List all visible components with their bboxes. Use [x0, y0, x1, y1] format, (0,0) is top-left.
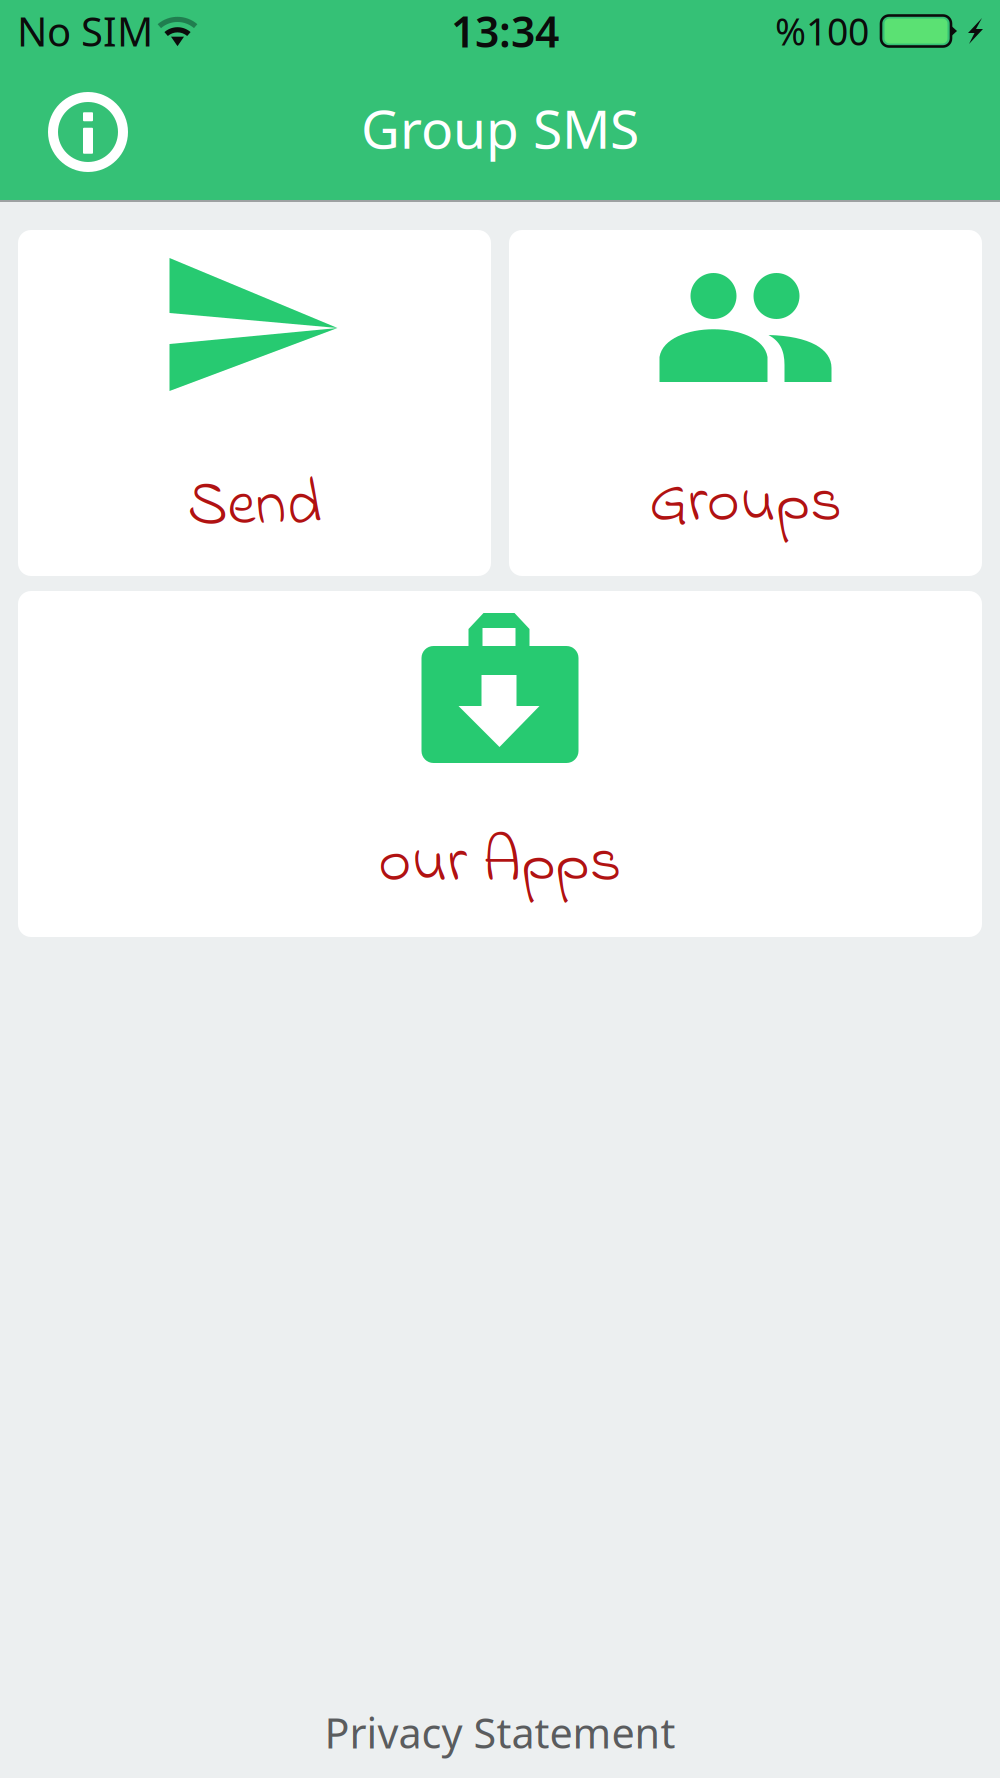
staticText: Send	[187, 462, 321, 553]
staticText: %100	[775, 6, 869, 56]
staticText: Privacy Statement	[324, 1705, 675, 1760]
button[interactable]: Info	[0, 62, 152, 200]
button[interactable]: our Apps	[18, 591, 982, 937]
staticText: No SIM	[17, 4, 153, 57]
staticText: our Apps	[378, 819, 621, 910]
button[interactable]: Groups	[509, 230, 982, 576]
staticText: 13:34	[451, 3, 559, 59]
staticText: Group SMS	[361, 93, 639, 163]
button[interactable]: Send	[18, 230, 491, 576]
button[interactable]: Privacy Statement	[0, 1689, 1000, 1776]
staticText: Groups	[649, 459, 842, 550]
